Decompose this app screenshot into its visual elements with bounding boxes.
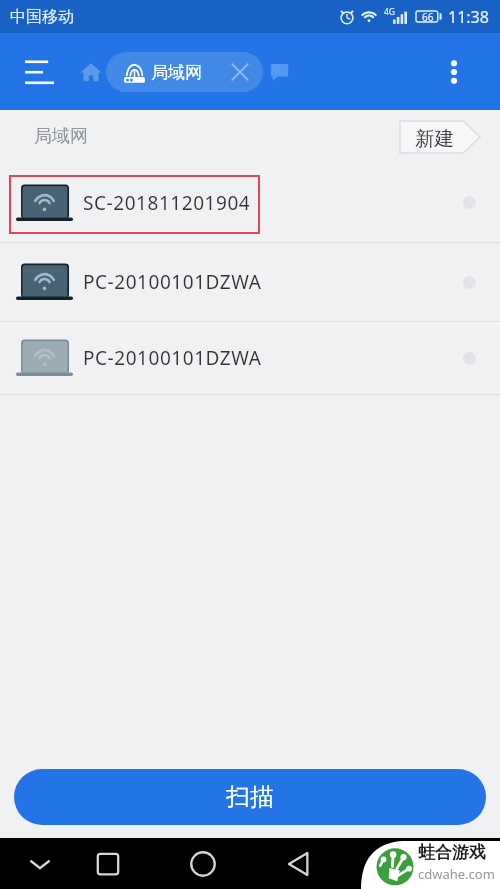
button[interactable]: Chat: [270, 63, 289, 81]
button[interactable]: 扫描: [14, 769, 486, 825]
staticText: 扫描: [226, 782, 274, 812]
button[interactable]: PC-20100101DZWA: [0, 243, 500, 321]
staticText: 66: [422, 10, 434, 23]
staticText: 4G: [384, 6, 396, 18]
button[interactable]: 局域网: [106, 52, 263, 92]
button[interactable]: Home: [80, 61, 102, 83]
staticText: 中国移动: [10, 7, 74, 27]
button[interactable]: More options: [442, 60, 466, 84]
button[interactable]: Hide: [23, 847, 57, 881]
staticText: 局域网: [34, 125, 88, 148]
button[interactable]: Recents: [91, 847, 125, 881]
staticText: cdwahe.com: [418, 865, 495, 883]
button[interactable]: Back: [281, 847, 315, 881]
button[interactable]: PC-20100101DZWA: [0, 322, 500, 394]
staticText: 局域网: [151, 62, 202, 83]
staticText: 11:38: [448, 6, 489, 28]
staticText: 蛙合游戏: [418, 842, 486, 863]
button[interactable]: SC-201811201904: [0, 163, 500, 242]
button[interactable]: Menu: [18, 52, 58, 92]
staticText: PC-20100101DZWA: [83, 345, 262, 371]
staticText: PC-20100101DZWA: [83, 269, 262, 295]
button[interactable]: 新建: [398, 119, 482, 155]
staticText: SC-201811201904: [83, 190, 251, 216]
button[interactable]: Close: [228, 60, 252, 84]
staticText: 新建: [415, 126, 454, 151]
button[interactable]: Home: [186, 847, 220, 881]
